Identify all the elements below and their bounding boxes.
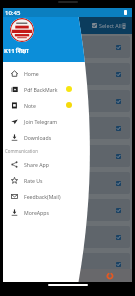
button[interactable]: MoreApps bbox=[3, 204, 97, 220]
button[interactable] bbox=[3, 36, 130, 58]
button[interactable] bbox=[3, 253, 130, 275]
staticText: MoreApps bbox=[24, 209, 49, 216]
button[interactable]: Join Telegram bbox=[3, 113, 97, 129]
button[interactable]: Downloads bbox=[3, 129, 97, 145]
button[interactable]: Home bbox=[3, 65, 97, 81]
button[interactable]: Delete bbox=[118, 20, 130, 32]
button[interactable] bbox=[3, 117, 130, 139]
button[interactable]: Share App bbox=[3, 156, 97, 172]
button[interactable]: Select All bbox=[91, 19, 123, 32]
staticText: Share App bbox=[24, 161, 49, 168]
button[interactable] bbox=[3, 90, 130, 112]
staticText: 10:45 bbox=[5, 9, 21, 17]
staticText: Downloads bbox=[24, 134, 52, 141]
button[interactable] bbox=[3, 63, 130, 85]
staticText: Communication bbox=[5, 148, 38, 154]
staticText: Note bbox=[24, 102, 36, 109]
staticText: Home bbox=[24, 70, 39, 77]
button[interactable] bbox=[3, 199, 130, 221]
staticText: Select All bbox=[99, 22, 122, 29]
button[interactable]: Feedback(Mail) bbox=[3, 188, 97, 204]
button[interactable] bbox=[3, 145, 130, 167]
button[interactable]: Rate Us bbox=[3, 172, 97, 188]
button[interactable] bbox=[3, 226, 130, 248]
button[interactable] bbox=[3, 172, 130, 194]
staticText: Pdf BackMark bbox=[24, 86, 58, 93]
button[interactable]: Note bbox=[3, 97, 97, 113]
staticText: K11 शिक्षा bbox=[4, 47, 29, 55]
staticText: Feedback(Mail) bbox=[24, 193, 61, 200]
button[interactable]: Refresh bbox=[104, 270, 115, 281]
staticText: Rate Us bbox=[24, 177, 43, 184]
button[interactable]: Pdf BackMark bbox=[3, 81, 97, 97]
staticText: Join Telegram bbox=[24, 118, 58, 125]
